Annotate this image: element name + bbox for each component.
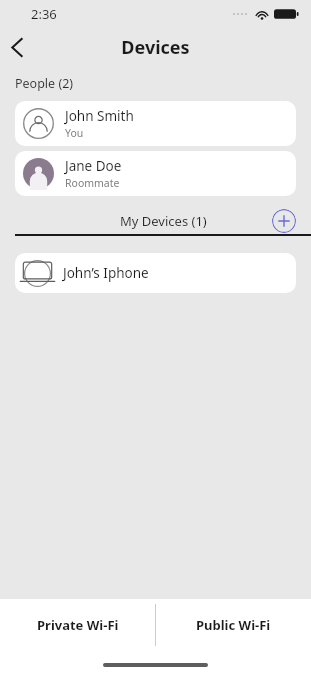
staticText: Private Wi-Fi xyxy=(37,616,119,634)
staticText: 2:36 xyxy=(31,5,57,23)
button[interactable]: Jane Doe xyxy=(15,151,296,196)
button[interactable]: My Devices (1) xyxy=(15,212,311,236)
staticText: You xyxy=(65,126,84,140)
button[interactable]: Add device xyxy=(272,209,296,233)
staticText: Jane Doe xyxy=(65,157,122,175)
staticText: Roommate xyxy=(65,176,120,190)
staticText: My Devices (1) xyxy=(120,212,207,230)
staticText: Public Wi-Fi xyxy=(196,616,271,634)
staticText: Devices xyxy=(121,35,190,60)
staticText: John’s Iphone xyxy=(63,264,149,282)
button[interactable]: Back xyxy=(0,30,34,64)
staticText: John Smith xyxy=(65,107,134,125)
staticText: People (2) xyxy=(15,75,74,92)
button[interactable]: Private Wi-Fi xyxy=(0,599,155,651)
button[interactable]: Public Wi-Fi xyxy=(155,599,311,651)
button[interactable]: John Smith xyxy=(15,101,296,146)
button[interactable]: John’s Iphone xyxy=(15,253,296,293)
